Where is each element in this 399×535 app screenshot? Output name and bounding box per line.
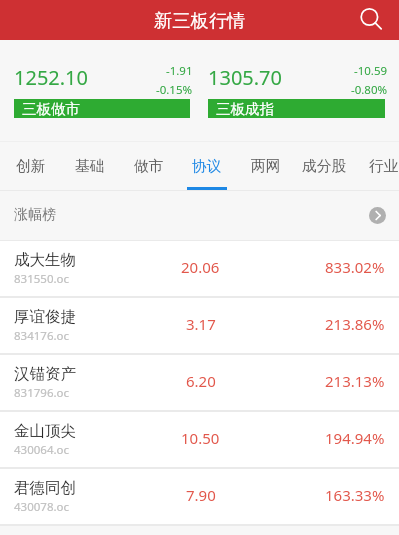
staticText: -10.59: [354, 63, 388, 79]
staticText: 213.13%: [325, 371, 385, 391]
button[interactable]: 金山顶尖: [0, 412, 399, 469]
button[interactable]: 做市: [119, 142, 178, 190]
button[interactable]: 成分股: [295, 142, 354, 190]
staticText: 1252.10: [14, 64, 88, 91]
staticText: 两网: [251, 157, 281, 176]
button[interactable]: 1305.70: [208, 40, 385, 142]
staticText: 430064.oc: [14, 442, 70, 458]
staticText: 三板做市: [22, 100, 80, 118]
staticText: 3.17: [186, 314, 216, 334]
staticText: 君德同创: [14, 478, 76, 498]
staticText: 831550.oc: [14, 271, 70, 287]
staticText: 833.02%: [325, 257, 385, 277]
button[interactable]: Search: [353, 0, 399, 40]
staticText: 10.50: [181, 428, 220, 448]
button[interactable]: 厚谊俊捷: [0, 298, 399, 355]
staticText: 20.06: [181, 257, 220, 277]
staticText: 7.90: [186, 485, 216, 505]
staticText: 金山顶尖: [14, 421, 76, 441]
staticText: 做市: [134, 157, 164, 176]
button[interactable]: 协议: [177, 142, 236, 190]
button[interactable]: More ranking: [369, 207, 386, 224]
staticText: -1.91: [166, 63, 193, 79]
staticText: 三板成指: [216, 100, 274, 118]
staticText: 行业: [369, 157, 399, 176]
button[interactable]: 君德同创: [0, 469, 399, 526]
staticText: 1305.70: [208, 64, 282, 91]
staticText: 163.33%: [325, 485, 385, 505]
staticText: 厚谊俊捷: [14, 307, 76, 327]
button[interactable]: 1252.10: [14, 40, 190, 142]
staticText: 成大生物: [14, 250, 76, 270]
button[interactable]: 涨幅榜: [0, 191, 399, 239]
button[interactable]: 汉锚资产: [0, 355, 399, 412]
staticText: 新三板行情: [154, 9, 246, 32]
staticText: 430078.oc: [14, 499, 70, 515]
button[interactable]: 基础: [60, 142, 119, 190]
staticText: 汉锚资产: [14, 364, 76, 384]
staticText: 基础: [75, 157, 105, 176]
staticText: 194.94%: [325, 428, 385, 448]
button[interactable]: 成大生物: [0, 241, 399, 298]
button[interactable]: 创新: [1, 142, 60, 190]
staticText: 涨幅榜: [14, 206, 56, 224]
staticText: 831796.oc: [14, 385, 70, 401]
button[interactable]: 两网: [236, 142, 295, 190]
button[interactable]: 行业: [354, 142, 399, 190]
staticText: -0.80%: [351, 82, 388, 98]
staticText: -0.15%: [156, 82, 193, 98]
staticText: 6.20: [186, 371, 216, 391]
staticText: 834176.oc: [14, 328, 70, 344]
staticText: 成分股: [302, 157, 347, 176]
staticText: 213.86%: [325, 314, 385, 334]
staticText: 创新: [16, 157, 46, 176]
staticText: 协议: [192, 157, 222, 176]
